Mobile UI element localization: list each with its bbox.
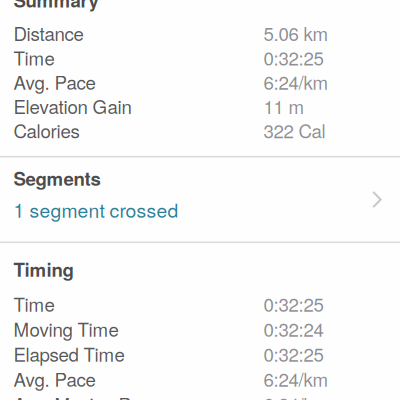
staticText: Distance [13, 20, 83, 46]
staticText: 0:32:25 [263, 290, 323, 317]
staticText: Time [13, 290, 54, 317]
staticText: Avg. Pace [13, 68, 95, 95]
staticText: Avg. Moving Pace [13, 390, 159, 400]
staticText: Timing [13, 256, 73, 282]
staticText: 0:32:25 [263, 44, 323, 71]
staticText: 6:24/km [263, 365, 328, 392]
staticText: Moving Time [13, 315, 118, 342]
staticText: Elapsed Time [13, 340, 124, 367]
staticText: 1 segment crossed [13, 196, 178, 223]
staticText: 6:24/km [263, 68, 328, 95]
staticText: Calories [13, 117, 79, 144]
staticText: Summary [13, 0, 98, 13]
staticText: Avg. Pace [13, 365, 95, 392]
staticText: 5.06 km [263, 20, 328, 46]
staticText: 0:32:24 [263, 315, 323, 342]
staticText: Segments [13, 165, 100, 191]
staticText: 322 Cal [263, 117, 325, 144]
staticText: 11 m [263, 93, 304, 119]
staticText: Elevation Gain [13, 93, 131, 119]
staticText: Time [13, 44, 54, 71]
staticText: 0:32:25 [263, 340, 323, 367]
staticText: 6:24/km [263, 390, 328, 400]
button[interactable]: Segments [0, 157, 400, 241]
